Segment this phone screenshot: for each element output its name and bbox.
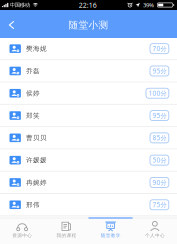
staticText: 随堂小测 bbox=[68, 19, 108, 31]
staticText: 曹贝贝 bbox=[26, 134, 47, 142]
staticText: 70分 bbox=[152, 44, 166, 53]
staticText: 50分 bbox=[152, 156, 166, 164]
staticText: 我的课程 bbox=[56, 233, 76, 238]
staticText: 乔磊 bbox=[26, 67, 40, 75]
button[interactable]: 个人中心 bbox=[133, 219, 177, 244]
button[interactable]: 侯婷 bbox=[0, 83, 177, 105]
staticText: 95分 bbox=[152, 67, 166, 75]
staticText: 樊海妮 bbox=[26, 44, 47, 53]
staticText: 95分 bbox=[152, 111, 166, 120]
staticText: 许媛媛 bbox=[26, 156, 47, 164]
staticText: 郑笑 bbox=[26, 111, 40, 120]
button[interactable]: 冉婉婷 bbox=[0, 172, 177, 194]
staticText: 个人中心 bbox=[145, 233, 165, 238]
staticText: 85分 bbox=[152, 134, 166, 142]
button[interactable]: 乔磊 bbox=[0, 60, 177, 83]
staticText: 100分 bbox=[148, 89, 166, 97]
button[interactable]: Back bbox=[0, 9, 23, 39]
button[interactable]: 随堂教学 bbox=[88, 219, 133, 244]
staticText: 随堂教学 bbox=[101, 233, 121, 238]
button[interactable]: 曹贝贝 bbox=[0, 127, 177, 149]
staticText: 75分 bbox=[152, 200, 166, 209]
staticText: 22:16 bbox=[79, 0, 97, 10]
button[interactable]: 樊海妮 bbox=[0, 38, 177, 60]
staticText: 中国移动 bbox=[10, 2, 30, 8]
staticText: 冉婉婷 bbox=[26, 178, 47, 186]
button[interactable]: 邢伟 bbox=[0, 194, 177, 216]
staticText: 侯婷 bbox=[26, 89, 40, 97]
button[interactable]: 资源中心 bbox=[0, 219, 44, 244]
button[interactable]: 许媛媛 bbox=[0, 149, 177, 172]
staticText: 资源中心 bbox=[12, 233, 32, 238]
button[interactable]: 郑笑 bbox=[0, 105, 177, 127]
staticText: 邢伟 bbox=[26, 201, 40, 209]
button[interactable]: 我的课程 bbox=[44, 219, 88, 244]
staticText: 90分 bbox=[152, 178, 166, 187]
staticText: 39% bbox=[143, 1, 154, 9]
